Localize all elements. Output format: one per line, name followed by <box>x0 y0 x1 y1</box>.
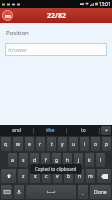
button[interactable]: d <box>30 153 39 167</box>
button[interactable]: g <box>52 153 61 167</box>
staticText: h <box>66 157 70 164</box>
button[interactable]: q <box>1 137 11 151</box>
button[interactable]: t <box>47 137 56 151</box>
staticText: w <box>16 141 20 148</box>
button[interactable]: i <box>80 137 89 151</box>
staticText: and <box>12 127 21 134</box>
button[interactable]: j <box>74 153 83 167</box>
button[interactable]: k <box>85 153 94 167</box>
button[interactable]: h <box>63 153 72 167</box>
staticText: n <box>78 173 82 180</box>
button[interactable]: n <box>75 169 84 183</box>
staticText: to <box>81 127 86 134</box>
staticText: s <box>22 157 25 164</box>
staticText: the <box>46 127 55 134</box>
staticText: Done <box>94 189 107 196</box>
button[interactable]: s <box>19 153 28 167</box>
staticText: Position <box>6 29 29 37</box>
button[interactable]: and <box>0 125 33 136</box>
button[interactable]: z <box>18 169 28 183</box>
button[interactable]: x <box>30 169 40 183</box>
button[interactable]: e <box>25 137 34 151</box>
button[interactable]: . <box>78 185 88 199</box>
staticText: m <box>5 12 11 20</box>
staticText: d <box>33 157 37 164</box>
staticText: x <box>34 173 37 180</box>
staticText: 22/82 <box>47 11 66 21</box>
staticText: z <box>22 173 25 180</box>
button[interactable]: key <box>1 169 16 183</box>
button[interactable]: App logo, navigate up <box>2 10 13 21</box>
staticText: t <box>51 141 53 148</box>
staticText: y <box>61 141 64 148</box>
staticText: m <box>88 173 93 180</box>
button[interactable]: u <box>69 137 78 151</box>
staticText: k <box>88 157 91 164</box>
button[interactable]: a <box>8 153 17 167</box>
staticText: Answer <box>8 46 28 53</box>
staticText: f <box>45 157 47 164</box>
button[interactable]: b <box>64 169 73 183</box>
button[interactable]: c <box>42 169 51 183</box>
staticText: r <box>39 141 42 148</box>
button[interactable]: p <box>102 137 111 151</box>
button[interactable]: key <box>14 185 24 199</box>
staticText: v <box>56 173 59 180</box>
button[interactable]: l <box>96 153 105 167</box>
button[interactable]: the <box>34 125 66 136</box>
staticText: j <box>78 157 80 164</box>
button[interactable]: f <box>41 153 50 167</box>
staticText: l <box>100 157 102 164</box>
button[interactable]: More suggestions <box>101 126 111 135</box>
button[interactable]: m <box>86 169 95 183</box>
staticText: e <box>28 141 31 148</box>
staticText: 13:01 <box>99 1 111 7</box>
staticText: u <box>72 141 76 148</box>
staticText: c <box>45 173 48 180</box>
button[interactable]: v <box>53 169 62 183</box>
button[interactable]: r <box>36 137 45 151</box>
staticText: i <box>84 141 86 148</box>
button[interactable]: to <box>67 125 99 136</box>
staticText: Copied to clipboard <box>35 166 77 172</box>
button[interactable]: o <box>91 137 100 151</box>
button[interactable]: key <box>97 169 111 183</box>
staticText: q <box>4 141 8 148</box>
button[interactable]: key <box>26 185 76 199</box>
staticText: o <box>94 141 98 148</box>
button[interactable]: Done <box>90 185 111 199</box>
button[interactable]: key <box>1 185 12 199</box>
button[interactable]: w <box>13 137 23 151</box>
button[interactable]: y <box>58 137 67 151</box>
button[interactable]: Answer <box>5 43 107 56</box>
staticText: p <box>105 141 109 148</box>
staticText: b <box>67 173 71 180</box>
staticText: g <box>55 157 59 164</box>
staticText: . <box>82 189 84 196</box>
staticText: a <box>11 157 14 164</box>
